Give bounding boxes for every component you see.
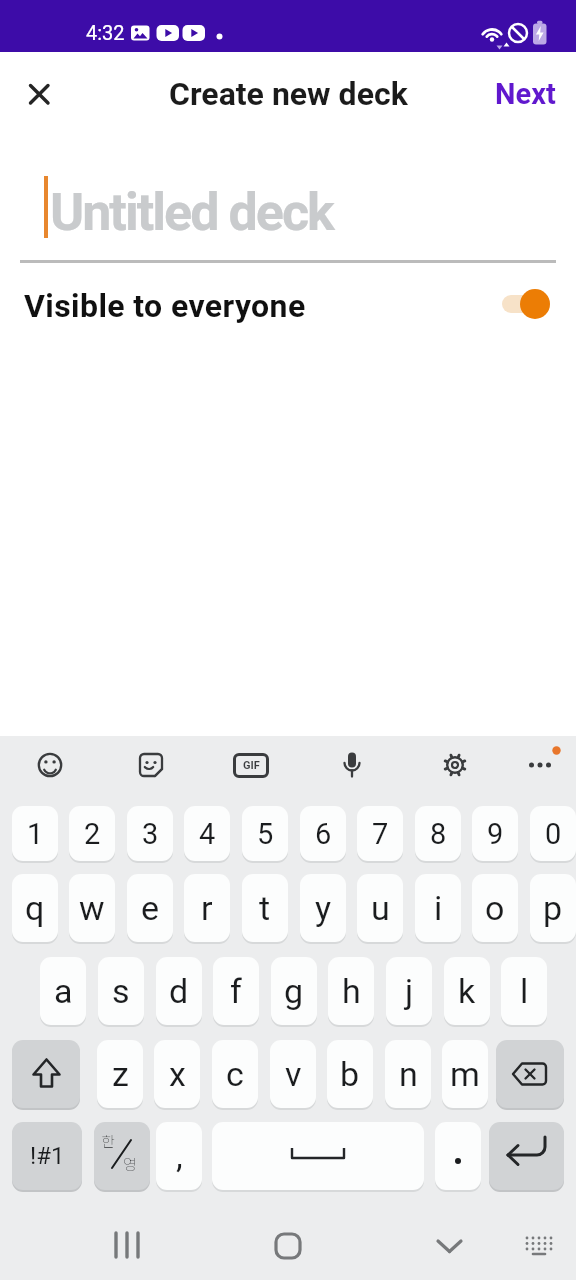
staticText: k (458, 971, 476, 1011)
staticText: c (226, 1054, 244, 1094)
button[interactable]: 2 (69, 806, 115, 861)
staticText: s (112, 971, 130, 1011)
staticText: 5 (257, 817, 274, 851)
button[interactable] (15, 70, 63, 118)
button[interactable]: !#1 (12, 1122, 82, 1190)
staticText: g (284, 971, 304, 1011)
button[interactable]: s (98, 957, 144, 1025)
button[interactable]: GIF (233, 753, 269, 778)
button[interactable] (127, 741, 175, 789)
staticText: 영 (123, 1153, 137, 1175)
staticText: i (434, 888, 443, 928)
staticText: e (141, 888, 160, 928)
button[interactable] (435, 1122, 481, 1190)
staticText: !#1 (30, 1142, 65, 1170)
staticText: 4 (199, 817, 216, 851)
button[interactable]: b (327, 1040, 373, 1108)
staticText: 8 (430, 817, 447, 851)
button[interactable]: p (530, 874, 576, 942)
staticText: j (405, 971, 414, 1011)
staticText: x (169, 1054, 186, 1094)
button[interactable] (26, 741, 74, 789)
button[interactable]: 5 (242, 806, 288, 861)
button[interactable] (431, 741, 479, 789)
button[interactable]: 9 (472, 806, 518, 861)
button[interactable]: o (472, 874, 518, 942)
button[interactable]: Next (470, 70, 566, 118)
button[interactable]: z (97, 1040, 143, 1108)
button[interactable]: i (415, 874, 461, 942)
button[interactable] (516, 741, 564, 789)
staticText: p (543, 888, 563, 928)
button[interactable] (421, 1217, 477, 1273)
button[interactable]: 7 (357, 806, 403, 861)
staticText: a (54, 971, 73, 1011)
staticText: h (342, 971, 361, 1011)
button[interactable] (496, 1040, 564, 1108)
button[interactable]: Visible to everyone (0, 274, 576, 338)
button[interactable]: c (212, 1040, 258, 1108)
staticText: 1 (27, 817, 44, 851)
staticText: b (340, 1054, 360, 1094)
staticText: o (485, 888, 505, 928)
staticText: t (259, 888, 271, 928)
button[interactable]: 3 (127, 806, 173, 861)
staticText: 6 (315, 817, 332, 851)
button[interactable]: n (385, 1040, 431, 1108)
button[interactable]: f (213, 957, 259, 1025)
button[interactable] (502, 295, 550, 313)
button[interactable]: m (442, 1040, 488, 1108)
staticText: q (25, 888, 45, 928)
button[interactable]: x (154, 1040, 200, 1108)
button[interactable]: q (12, 874, 58, 942)
button[interactable]: g (271, 957, 317, 1025)
staticText: z (112, 1054, 129, 1094)
button[interactable] (260, 1217, 316, 1273)
staticText: 2 (84, 817, 101, 851)
button[interactable] (94, 1122, 150, 1190)
staticText: , (176, 1136, 183, 1176)
button[interactable] (227, 741, 275, 789)
button[interactable]: k (444, 957, 490, 1025)
staticText: Visible to everyone (24, 287, 306, 325)
staticText: f (230, 971, 242, 1011)
staticText: 7 (372, 817, 389, 851)
button[interactable]: w (69, 874, 115, 942)
button[interactable] (12, 1040, 80, 1108)
button[interactable]: Untitled deck (50, 181, 450, 243)
button[interactable]: d (156, 957, 202, 1025)
staticText: 한 (101, 1130, 115, 1152)
button[interactable] (510, 1217, 566, 1273)
button[interactable]: v (270, 1040, 316, 1108)
staticText: d (169, 971, 189, 1011)
button[interactable] (328, 741, 376, 789)
button[interactable]: 0 (530, 806, 576, 861)
button[interactable]: 8 (415, 806, 461, 861)
staticText: GIF (243, 759, 260, 772)
button[interactable]: u (357, 874, 403, 942)
button[interactable]: l (501, 957, 547, 1025)
button[interactable]: 1 (12, 806, 58, 861)
button[interactable] (489, 1122, 564, 1190)
staticText: 0 (545, 817, 562, 851)
button[interactable] (212, 1122, 424, 1190)
staticText: Next (495, 77, 556, 111)
staticText: 4:32 (86, 21, 125, 44)
button[interactable] (99, 1217, 155, 1273)
staticText: y (315, 888, 332, 928)
button[interactable]: j (386, 957, 432, 1025)
staticText: w (79, 888, 105, 928)
button[interactable]: r (184, 874, 230, 942)
button[interactable]: e (127, 874, 173, 942)
staticText: l (520, 971, 529, 1011)
button[interactable]: , (156, 1122, 202, 1190)
button[interactable]: h (328, 957, 374, 1025)
button[interactable]: 4 (184, 806, 230, 861)
staticText: 9 (487, 817, 504, 851)
button[interactable]: 6 (300, 806, 346, 861)
staticText: Untitled deck (50, 182, 333, 243)
staticText: n (399, 1054, 418, 1094)
button[interactable]: t (242, 874, 288, 942)
button[interactable]: a (40, 957, 86, 1025)
button[interactable]: y (300, 874, 346, 942)
